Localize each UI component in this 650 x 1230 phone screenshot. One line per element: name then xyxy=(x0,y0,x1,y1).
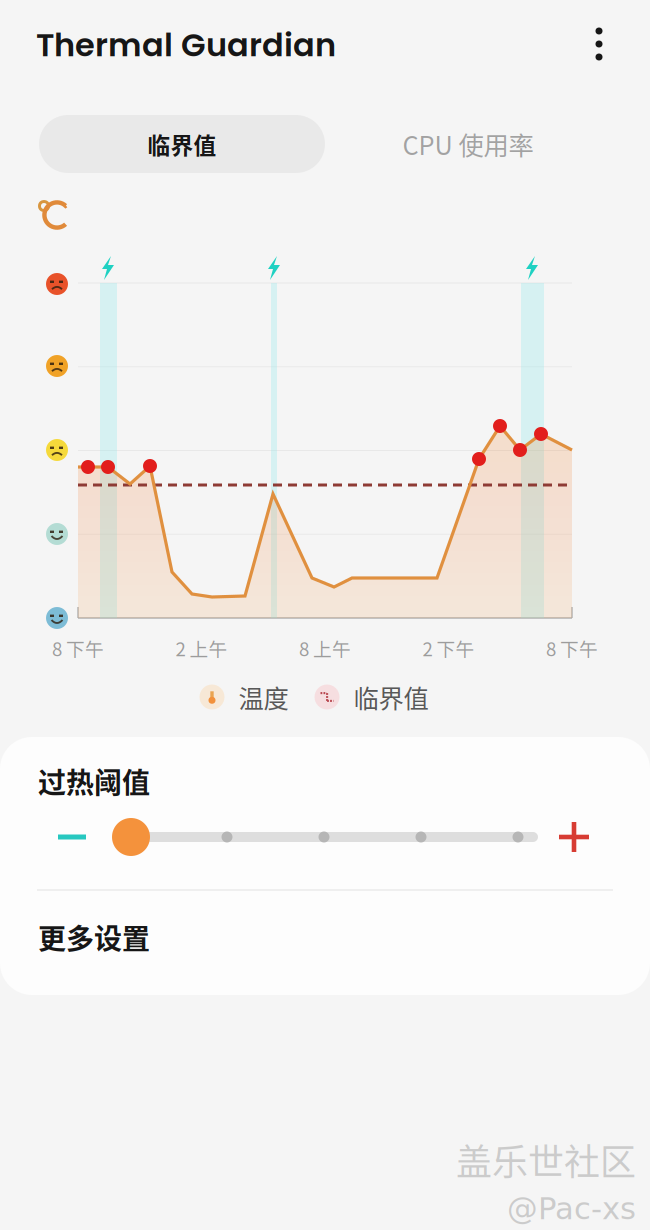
staticText: 过热阈值 xyxy=(38,761,150,801)
staticText: 盖乐世社区 xyxy=(456,1134,636,1186)
button[interactable]: 临界值 xyxy=(39,115,325,173)
button[interactable]: Increase threshold xyxy=(552,815,596,859)
staticText: 8 下午 xyxy=(52,634,104,661)
button[interactable]: 更多设置 xyxy=(0,894,650,980)
button[interactable]: CPU 使用率 xyxy=(363,115,573,173)
staticText: Thermal Guardian xyxy=(36,23,336,67)
button[interactable]: Decrease threshold xyxy=(50,815,94,859)
button[interactable]: More options xyxy=(573,18,625,70)
staticText: 临界值 xyxy=(147,128,216,160)
staticText: 8 上午 xyxy=(299,634,351,661)
staticText: 2 下午 xyxy=(422,634,474,661)
staticText: 临界值 xyxy=(353,679,428,715)
staticText: 温度 xyxy=(238,679,288,715)
staticText: CPU 使用率 xyxy=(402,126,533,162)
staticText: 更多设置 xyxy=(38,917,150,957)
staticText: 8 下午 xyxy=(546,634,598,661)
staticText: @Pac-xs xyxy=(507,1191,636,1226)
staticText: 2 上午 xyxy=(175,634,227,661)
